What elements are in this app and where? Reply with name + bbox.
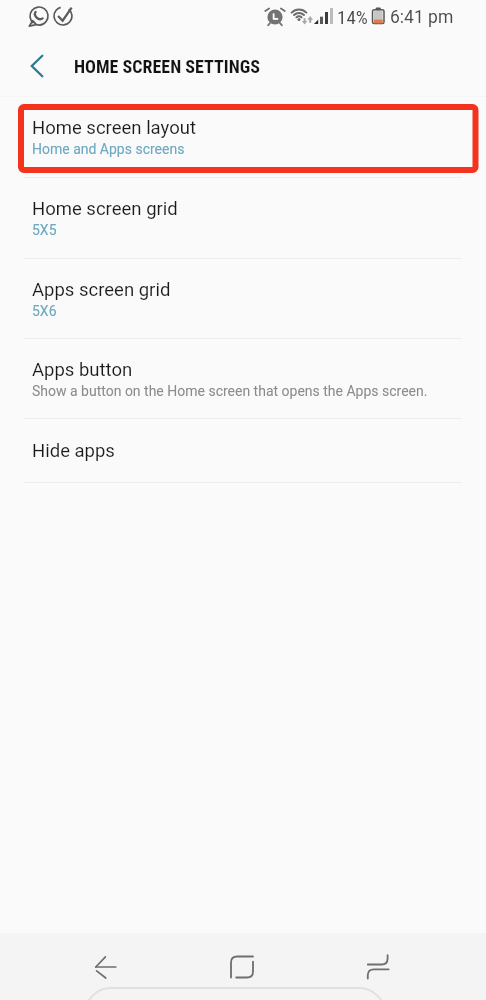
button[interactable]: Home screen grid (0, 178, 486, 258)
staticText: Hide apps (32, 440, 115, 462)
staticText: Show a button on the Home screen that op… (32, 383, 428, 399)
button[interactable]: Home (218, 943, 266, 991)
staticText: Home screen grid (32, 198, 178, 220)
button[interactable]: Apps screen grid (0, 259, 486, 338)
button[interactable]: Navigate up (0, 36, 74, 96)
button[interactable]: Apps button (0, 339, 486, 418)
button[interactable]: Home screen layout (0, 97, 486, 177)
button[interactable]: Recent apps (354, 943, 402, 991)
staticText: Apps screen grid (32, 279, 171, 301)
button[interactable]: Hide apps (0, 419, 486, 482)
button[interactable]: Back (82, 943, 130, 991)
staticText: 6:41 pm (390, 7, 454, 28)
staticText: 5X5 (32, 222, 57, 238)
staticText: 14% (337, 6, 368, 28)
staticText: Home and Apps screens (32, 141, 185, 157)
staticText: 5X6 (32, 303, 57, 319)
staticText: Apps button (32, 359, 133, 381)
staticText: Home screen layout (32, 117, 196, 139)
staticText: HOME SCREEN SETTINGS (74, 56, 260, 77)
